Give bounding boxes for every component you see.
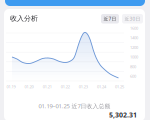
staticText: 800 bbox=[130, 64, 136, 69]
staticText: 01.22 bbox=[61, 84, 70, 89]
staticText: 01.20 bbox=[25, 84, 34, 89]
staticText: 01.21 bbox=[43, 84, 52, 89]
button[interactable]: 近7日 bbox=[101, 14, 119, 23]
staticText: 近30日 bbox=[124, 15, 140, 22]
staticText: 1600 bbox=[130, 25, 138, 31]
staticText: 01.19–01.25 近7日收入总额 bbox=[38, 102, 110, 110]
staticText: 1000 bbox=[130, 54, 138, 60]
staticText: 01.23 bbox=[79, 84, 88, 89]
staticText: 01.19 bbox=[6, 84, 15, 89]
staticText: 1400 bbox=[130, 35, 138, 40]
staticText: 5,302.31 bbox=[109, 110, 137, 119]
staticText: 01.24 bbox=[97, 84, 106, 89]
button[interactable]: 近30日 bbox=[122, 14, 143, 23]
staticText: 收入分析 bbox=[10, 14, 38, 23]
staticText: 01.25 bbox=[115, 84, 124, 89]
staticText: 1200 bbox=[130, 45, 138, 50]
staticText: 600 bbox=[130, 73, 136, 79]
staticText: 近7日 bbox=[103, 15, 116, 22]
